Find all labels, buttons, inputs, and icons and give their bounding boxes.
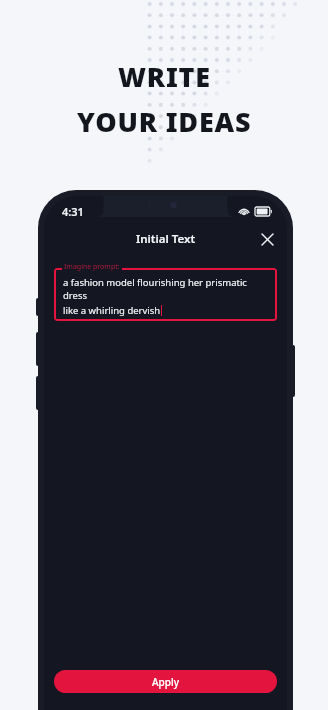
staticText: a fashion model flourishing her prismati… xyxy=(63,276,268,302)
staticText: like a whirling dervish xyxy=(63,304,161,317)
button[interactable]: Close xyxy=(255,227,279,251)
staticText: WRITE xyxy=(118,58,211,95)
staticText: Apply xyxy=(152,675,179,689)
button[interactable]: a fashion model flourishing her prismati… xyxy=(54,268,277,321)
button[interactable]: Apply xyxy=(54,670,277,693)
staticText: YOUR IDEAS xyxy=(77,103,252,140)
staticText: Imagine prompt: xyxy=(64,262,120,272)
staticText: 4:31 xyxy=(62,204,84,219)
staticText: Initial Text xyxy=(136,231,196,247)
